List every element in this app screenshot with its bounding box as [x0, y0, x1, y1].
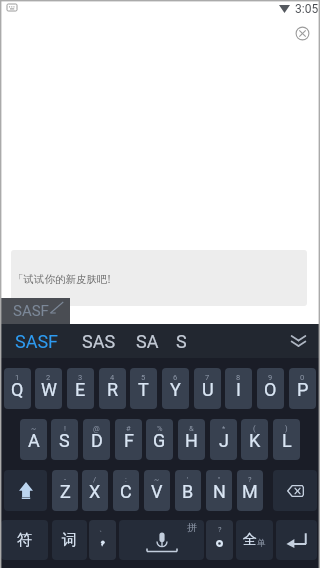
button[interactable]: -: [52, 470, 78, 511]
button[interactable]: 4: [99, 368, 126, 409]
button[interactable]: /: [82, 470, 108, 511]
button[interactable]: Full stop: [206, 520, 233, 560]
staticText: L: [282, 430, 292, 451]
staticText: 符: [17, 531, 32, 550]
staticText: SASF: [15, 331, 59, 352]
staticText: ?: [248, 475, 252, 484]
staticText: SASF: [13, 302, 49, 320]
staticText: 全: [243, 531, 257, 549]
staticText: ': [187, 475, 189, 484]
staticText: Q: [11, 379, 24, 400]
button[interactable]: 6: [162, 368, 189, 409]
button[interactable]: Comma: [89, 520, 116, 560]
staticText: @: [93, 424, 100, 433]
staticText: &: [189, 424, 194, 433]
staticText: S: [176, 331, 187, 352]
button[interactable]: 2: [35, 368, 62, 409]
staticText: 「试试你的新皮肤吧!: [13, 273, 111, 286]
staticText: 3:05: [295, 2, 319, 16]
staticText: P: [297, 379, 309, 400]
staticText: 拼: [187, 521, 197, 534]
staticText: U: [202, 379, 214, 400]
staticText: ~: [31, 424, 37, 433]
staticText: 3: [78, 373, 83, 382]
button[interactable]: Backspace: [273, 470, 317, 511]
button[interactable]: 7: [194, 368, 221, 409]
button[interactable]: ): [273, 419, 300, 460]
staticText: 单: [257, 537, 266, 548]
staticText: W: [41, 379, 57, 400]
button[interactable]: SAS: [81, 324, 117, 358]
staticText: A: [28, 430, 40, 451]
button[interactable]: 0: [289, 368, 316, 409]
staticText: N: [213, 481, 226, 502]
staticText: 0: [300, 373, 305, 382]
button[interactable]: SA: [135, 324, 160, 358]
button[interactable]: :: [113, 470, 139, 511]
button[interactable]: 「试试你的新皮肤吧!: [11, 250, 307, 306]
staticText: :: [125, 475, 127, 484]
button[interactable]: *: [210, 419, 237, 460]
staticText: *: [222, 424, 226, 433]
button[interactable]: Space and voice input: [119, 520, 204, 560]
button[interactable]: S: [175, 324, 188, 358]
staticText: ~: [154, 475, 160, 484]
button[interactable]: Enter: [276, 520, 317, 560]
button[interactable]: 9: [257, 368, 284, 409]
staticText: 、: [99, 524, 107, 533]
staticText: 6: [173, 373, 178, 382]
staticText: S: [59, 430, 70, 451]
staticText: ?: [218, 525, 222, 534]
staticText: I: [236, 379, 241, 400]
staticText: #: [126, 424, 131, 433]
staticText: G: [153, 430, 166, 451]
staticText: H: [185, 430, 198, 451]
button[interactable]: 词: [52, 520, 87, 560]
staticText: O: [264, 379, 277, 400]
staticText: %: [157, 424, 163, 433]
button[interactable]: ": [206, 470, 232, 511]
button[interactable]: @: [83, 419, 110, 460]
staticText: 词: [62, 531, 77, 550]
button[interactable]: #: [115, 419, 142, 460]
staticText: D: [91, 430, 103, 451]
button[interactable]: %: [146, 419, 173, 460]
button[interactable]: 全: [236, 520, 273, 560]
staticText: (: [253, 424, 256, 433]
button[interactable]: 符: [1, 520, 48, 560]
staticText: V: [151, 481, 163, 502]
staticText: J: [219, 430, 229, 451]
button[interactable]: SASF: [0, 298, 70, 324]
staticText: !: [64, 424, 66, 433]
staticText: SAS: [82, 331, 116, 352]
button[interactable]: Close: [291, 22, 314, 45]
staticText: Z: [60, 481, 71, 502]
button[interactable]: ~: [144, 470, 170, 511]
staticText: X: [89, 481, 101, 502]
staticText: ): [285, 424, 288, 433]
button[interactable]: (: [241, 419, 268, 460]
button[interactable]: 8: [225, 368, 252, 409]
button[interactable]: ': [175, 470, 201, 511]
button[interactable]: !: [51, 419, 78, 460]
staticText: C: [120, 481, 132, 502]
staticText: 4: [110, 373, 115, 382]
button[interactable]: SASF: [14, 324, 60, 358]
button[interactable]: Expand suggestions: [282, 324, 314, 358]
staticText: Y: [170, 379, 181, 400]
staticText: B: [182, 481, 194, 502]
staticText: M: [242, 481, 258, 502]
staticText: SA: [136, 331, 159, 352]
staticText: 1: [15, 373, 20, 382]
button[interactable]: Shift: [4, 470, 47, 511]
button[interactable]: ~: [20, 419, 47, 460]
staticText: F: [124, 430, 134, 451]
button[interactable]: 3: [67, 368, 94, 409]
button[interactable]: &: [178, 419, 205, 460]
staticText: 2: [46, 373, 51, 382]
button[interactable]: 1: [4, 368, 31, 409]
button[interactable]: 5: [130, 368, 157, 409]
staticText: 7: [205, 373, 210, 382]
button[interactable]: ?: [237, 470, 263, 511]
staticText: T: [138, 379, 149, 400]
